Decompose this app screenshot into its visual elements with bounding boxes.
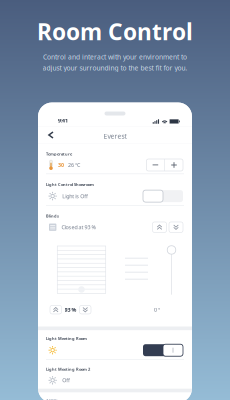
staticText: 26 °C bbox=[68, 161, 80, 169]
button[interactable]: Lower blinds bbox=[169, 222, 183, 232]
staticText: 93 % bbox=[64, 306, 76, 313]
staticText: Room Control bbox=[37, 16, 193, 47]
staticText: Light Control Showroom bbox=[46, 182, 94, 187]
button[interactable]: Light toggle bbox=[143, 344, 183, 356]
staticText: 9:41 bbox=[58, 117, 68, 124]
staticText: Control and interact with your environme… bbox=[43, 53, 187, 61]
staticText: Closed at 93 % bbox=[61, 224, 95, 231]
button[interactable]: Increase bbox=[50, 305, 61, 314]
staticText: Everest bbox=[103, 132, 126, 140]
staticText: Light Meeting Room 2 bbox=[46, 366, 90, 372]
staticText: Blinds bbox=[46, 213, 59, 219]
button[interactable]: Decrease bbox=[79, 305, 91, 314]
staticText: 0 ° bbox=[154, 306, 160, 313]
staticText: Off bbox=[62, 377, 70, 384]
staticText: Light is Off bbox=[62, 193, 88, 200]
staticText: 1005 bbox=[46, 397, 58, 400]
button[interactable]: Raise blinds bbox=[152, 222, 166, 232]
button[interactable]: Increase temperature bbox=[165, 159, 183, 171]
staticText: adjust your surrounding to the best fit … bbox=[42, 63, 187, 72]
staticText: Temperature bbox=[46, 151, 72, 156]
staticText: Light Meeting Room bbox=[46, 336, 87, 341]
button[interactable]: Back bbox=[38, 127, 60, 143]
button[interactable]: Light toggle bbox=[143, 190, 183, 202]
button[interactable]: Decrease temperature bbox=[146, 159, 164, 171]
staticText: 30 bbox=[58, 161, 64, 169]
